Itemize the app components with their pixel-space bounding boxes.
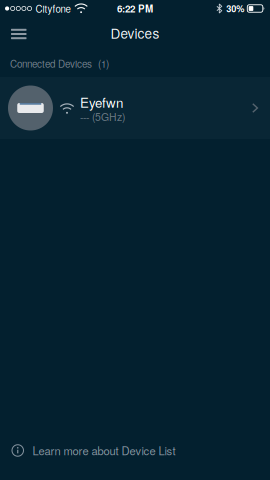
staticText: Devices bbox=[110, 23, 159, 42]
staticText: Learn more about Device List bbox=[32, 442, 175, 458]
staticText: Eyefwn bbox=[80, 92, 123, 112]
staticText: --- (5GHz) bbox=[80, 109, 125, 124]
staticText: 6:22 PM bbox=[117, 1, 153, 15]
button[interactable]: Eyefwn bbox=[0, 77, 270, 139]
staticText: Connected Devices (1) bbox=[10, 56, 109, 70]
staticText: Cityfone bbox=[36, 1, 71, 15]
button[interactable]: Menu bbox=[0, 22, 34, 46]
button[interactable]: Learn more about Device List bbox=[0, 442, 270, 480]
staticText: 30% bbox=[226, 2, 244, 15]
